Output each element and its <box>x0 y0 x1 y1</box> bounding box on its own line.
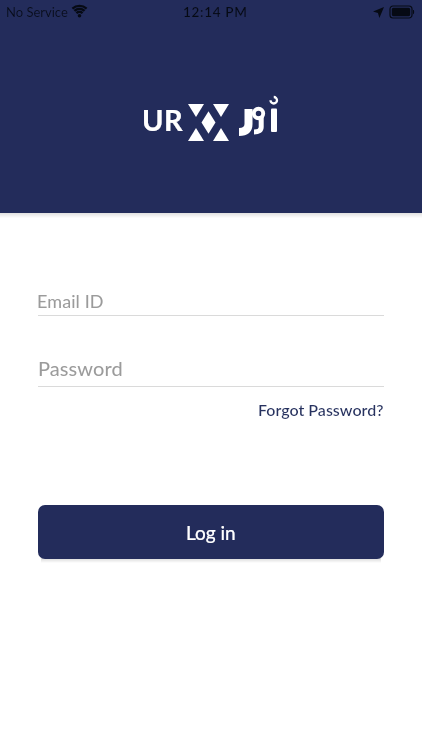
button[interactable]: Log in <box>38 505 384 559</box>
staticText: Log in <box>186 521 236 544</box>
staticText: Forgot Password? <box>258 400 384 419</box>
staticText: UR <box>142 102 184 137</box>
staticText: Email ID <box>37 290 104 312</box>
staticText: Password <box>38 356 123 380</box>
staticText: 12:14 PM <box>183 4 248 20</box>
button[interactable]: Password <box>38 356 123 380</box>
button[interactable]: Email ID <box>37 290 104 312</box>
button[interactable]: Forgot Password? <box>258 400 384 419</box>
staticText: No Service <box>6 4 68 20</box>
